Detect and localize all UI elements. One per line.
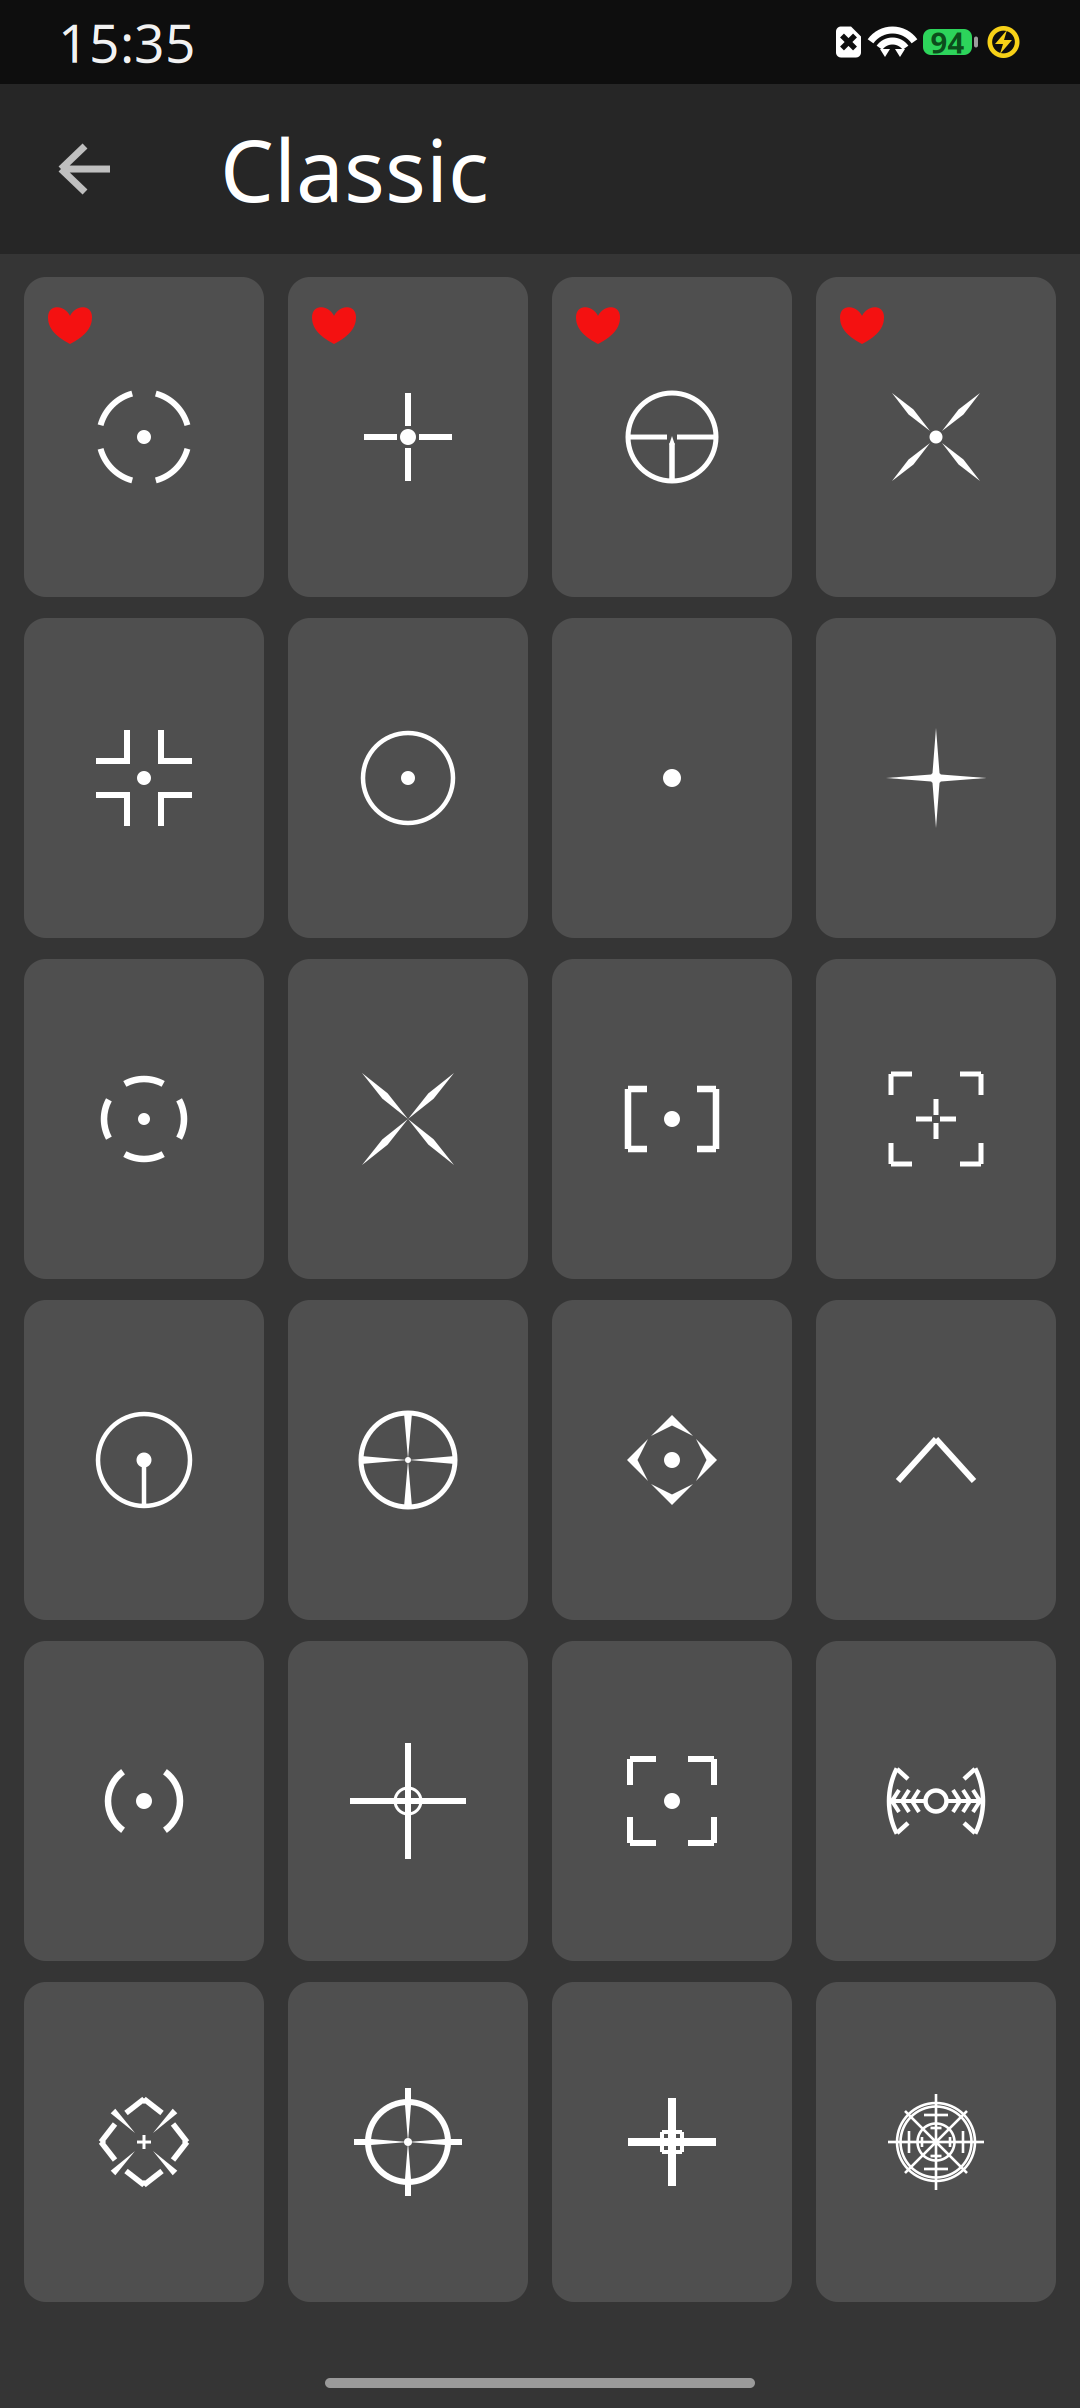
button[interactable]: Back	[0, 114, 140, 224]
button[interactable]: Crosshair 24	[816, 1982, 1056, 2302]
button[interactable]: Crosshair 10	[288, 959, 528, 1279]
button[interactable]: Crosshair 14	[288, 1300, 528, 1620]
button[interactable]: Crosshair 6	[288, 618, 528, 938]
button[interactable]: Crosshair 22	[288, 1982, 528, 2302]
button[interactable]: Crosshair 16	[816, 1300, 1056, 1620]
button[interactable]: Crosshair 5	[24, 618, 264, 938]
staticText: 15:35	[58, 7, 196, 77]
button[interactable]: Crosshair 7	[552, 618, 792, 938]
staticText: Classic	[220, 112, 489, 226]
button[interactable]: Crosshair 1	[24, 277, 264, 597]
button[interactable]: Crosshair 19	[552, 1641, 792, 1961]
button[interactable]: Crosshair 21	[24, 1982, 264, 2302]
button[interactable]: Crosshair 23	[552, 1982, 792, 2302]
button[interactable]: Crosshair 11	[552, 959, 792, 1279]
button[interactable]: Crosshair 15	[552, 1300, 792, 1620]
button[interactable]: Crosshair 17	[24, 1641, 264, 1961]
button[interactable]: Crosshair 4	[816, 277, 1056, 597]
button[interactable]: Crosshair 20	[816, 1641, 1056, 1961]
button[interactable]: Crosshair 8	[816, 618, 1056, 938]
staticText: 94	[930, 22, 964, 61]
button[interactable]: Crosshair 3	[552, 277, 792, 597]
button[interactable]: Crosshair 9	[24, 959, 264, 1279]
button[interactable]: Crosshair 18	[288, 1641, 528, 1961]
button[interactable]: Crosshair 13	[24, 1300, 264, 1620]
button[interactable]: Crosshair 2	[288, 277, 528, 597]
button[interactable]: Crosshair 12	[816, 959, 1056, 1279]
